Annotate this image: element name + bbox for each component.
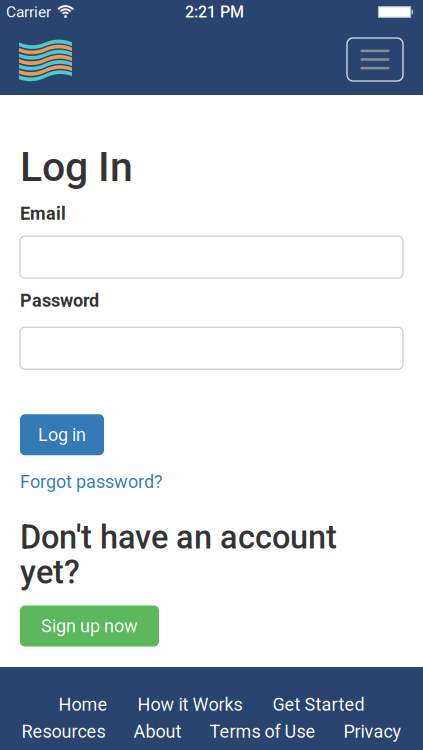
staticText: Terms of Use (209, 721, 315, 742)
button[interactable]: Home (58, 694, 107, 715)
staticText: Log In (20, 143, 133, 191)
staticText: Carrier (6, 3, 51, 21)
staticText: About (133, 721, 181, 742)
staticText: Email (20, 203, 66, 224)
button[interactable]: Privacy (343, 721, 401, 742)
button[interactable]: Log in (20, 414, 104, 455)
staticText: Get Started (272, 694, 364, 715)
staticText: Forgot password? (20, 471, 163, 492)
staticText: 2:21 PM (185, 3, 244, 21)
button[interactable]: Forgot password? (20, 471, 163, 492)
staticText: Log in (38, 424, 86, 445)
button[interactable]: Terms of Use (209, 721, 315, 742)
staticText: How it Works (137, 694, 242, 715)
button[interactable]: About (133, 721, 181, 742)
button[interactable]: Sign up now (20, 605, 159, 646)
staticText: Home (58, 694, 107, 715)
button[interactable]: How it Works (137, 694, 242, 715)
staticText: Privacy (343, 721, 401, 742)
staticText: Don't have an account yet? (20, 518, 337, 591)
button[interactable]: Resources (21, 721, 105, 742)
button[interactable]: Menu (347, 38, 403, 81)
button[interactable]: Get Started (272, 694, 364, 715)
staticText: Resources (21, 721, 105, 742)
staticText: Password (20, 290, 99, 311)
staticText: Sign up now (41, 615, 138, 637)
